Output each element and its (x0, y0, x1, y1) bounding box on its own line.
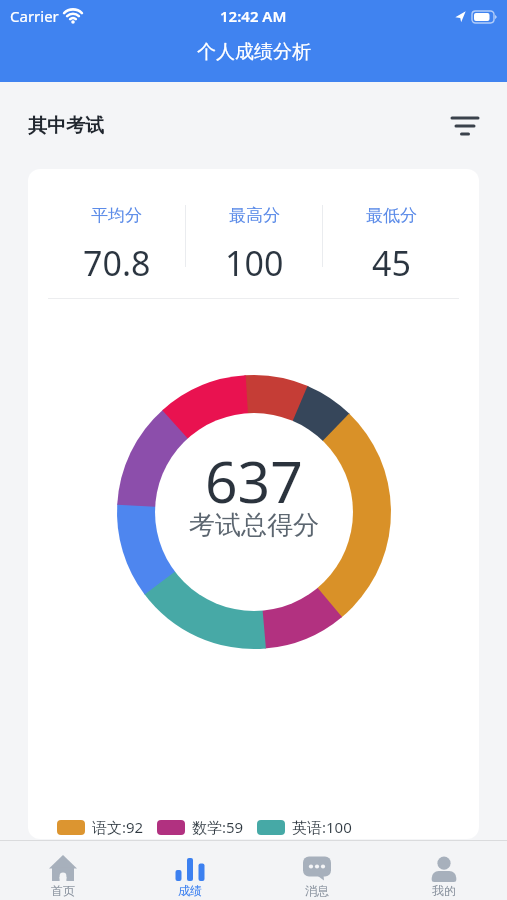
staticText: 最高分 (229, 205, 280, 226)
staticText: 637 (205, 442, 303, 520)
staticText: 我的 (432, 883, 456, 898)
staticText: 平均分 (91, 205, 142, 226)
staticText: 语文:92 (92, 817, 144, 837)
button[interactable]: 我的 (380, 841, 507, 900)
button[interactable] (452, 116, 478, 136)
staticText: 45 (372, 240, 411, 286)
button[interactable]: 消息 (253, 841, 380, 900)
button[interactable]: 首页 (0, 841, 126, 900)
staticText: 个人成绩分析 (197, 40, 311, 64)
staticText: 100 (225, 240, 284, 286)
button[interactable]: 语文:92 (57, 817, 144, 837)
staticText: Carrier (10, 6, 59, 26)
button[interactable]: 成绩 (126, 841, 253, 900)
staticText: 考试总得分 (189, 509, 319, 542)
staticText: 消息 (305, 883, 329, 898)
staticText: 数学:59 (192, 817, 244, 837)
staticText: 英语:100 (292, 817, 352, 837)
staticText: 12:42 AM (220, 6, 287, 26)
staticText: 首页 (51, 883, 75, 898)
button[interactable]: 数学:59 (157, 817, 244, 837)
staticText: 成绩 (178, 883, 202, 898)
staticText: 70.8 (83, 240, 151, 286)
button[interactable]: 英语:100 (257, 817, 352, 837)
staticText: 最低分 (366, 205, 417, 226)
staticText: 其中考试 (28, 114, 104, 138)
